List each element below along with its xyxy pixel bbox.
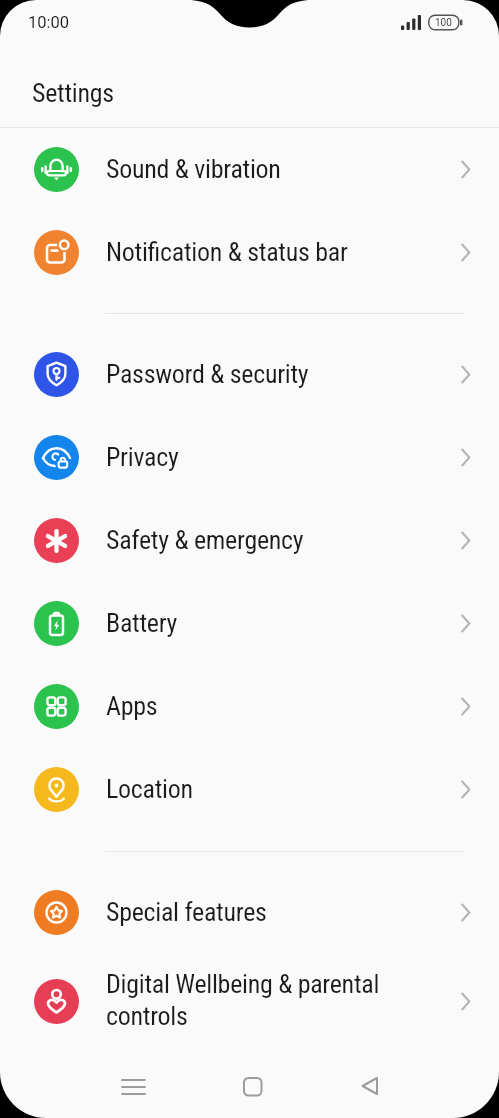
button[interactable]: Notification & status bar xyxy=(0,211,499,294)
staticText: Sound & vibration xyxy=(106,154,281,184)
button[interactable] xyxy=(361,1077,379,1095)
staticText: Notification & status bar xyxy=(106,237,348,267)
staticText: Special features xyxy=(106,897,267,927)
staticText: Password & security xyxy=(106,359,309,389)
staticText: Privacy xyxy=(106,442,179,472)
staticText: 10:00 xyxy=(28,13,70,32)
staticText: Digital Wellbeing & parental controls xyxy=(106,969,380,1031)
button[interactable]: Privacy xyxy=(0,416,499,499)
staticText: Battery xyxy=(106,608,178,638)
button[interactable]: Digital Wellbeing & parental controls xyxy=(0,954,499,1048)
staticText: Safety & emergency xyxy=(106,525,304,555)
button[interactable]: Password & security xyxy=(0,333,499,416)
staticText: Apps xyxy=(106,691,158,721)
button[interactable] xyxy=(243,1077,263,1097)
staticText: 100 xyxy=(435,17,452,29)
staticText: Location xyxy=(106,774,193,804)
button[interactable]: Safety & emergency xyxy=(0,499,499,582)
button[interactable] xyxy=(121,1079,147,1095)
staticText: Settings xyxy=(32,78,114,108)
button[interactable]: Apps xyxy=(0,665,499,748)
button[interactable]: Special features xyxy=(0,871,499,954)
button[interactable]: Battery xyxy=(0,582,499,665)
button[interactable]: Sound & vibration xyxy=(0,128,499,211)
button[interactable]: Location xyxy=(0,748,499,831)
